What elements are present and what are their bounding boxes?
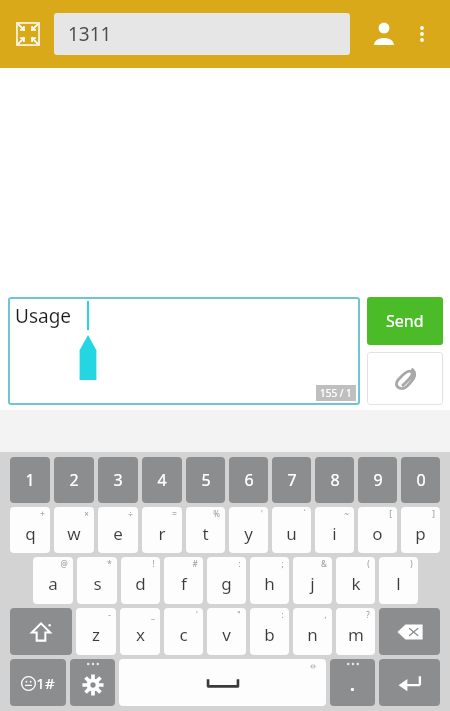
staticText: !: [152, 558, 155, 569]
staticText: &: [321, 558, 327, 569]
staticText: e: [113, 522, 123, 545]
button[interactable]: ÷: [98, 507, 138, 553]
button[interactable]: Usage: [8, 297, 360, 405]
button[interactable]: Space: [119, 659, 326, 706]
staticText: [: [389, 508, 392, 519]
staticText: ': [196, 609, 198, 620]
staticText: `: [303, 508, 306, 519]
button[interactable]: 5: [186, 457, 225, 503]
button[interactable]: 9: [358, 457, 397, 503]
staticText: 3: [113, 469, 123, 491]
staticText: m: [348, 623, 364, 646]
button[interactable]: %: [186, 507, 225, 553]
staticText: 6: [244, 469, 254, 491]
staticText: h: [264, 572, 275, 595]
staticText: ': [261, 508, 263, 519]
button[interactable]: 1#: [10, 659, 66, 706]
button[interactable]: *: [77, 557, 117, 604]
staticText: ": [237, 609, 241, 620]
button[interactable]: Keyboard settings: [70, 659, 115, 706]
button[interactable]: ~: [315, 507, 354, 553]
staticText: i: [332, 522, 337, 545]
button[interactable]: ?: [336, 608, 375, 655]
staticText: 7: [287, 469, 297, 491]
button[interactable]: ': [229, 507, 268, 553]
button[interactable]: [: [358, 507, 397, 553]
staticText: w: [67, 522, 81, 545]
button[interactable]: ×: [54, 507, 94, 553]
staticText: (: [367, 558, 370, 569]
button[interactable]: ,: [293, 608, 332, 655]
button[interactable]: 1: [10, 457, 50, 503]
button[interactable]: 2: [54, 457, 94, 503]
button[interactable]: :: [207, 557, 246, 604]
staticText: :: [238, 558, 241, 569]
staticText: _: [151, 609, 155, 620]
staticText: y: [244, 522, 253, 545]
staticText: k: [351, 572, 361, 595]
button[interactable]: +: [10, 507, 50, 553]
staticText: Usage: [15, 303, 72, 329]
staticText: a: [48, 572, 58, 595]
staticText: 5: [201, 469, 211, 491]
button[interactable]: Enter: [379, 659, 440, 706]
staticText: *: [107, 558, 112, 569]
staticText: 0: [416, 469, 426, 491]
button[interactable]: ]: [401, 507, 440, 553]
button[interactable]: !: [121, 557, 160, 604]
button[interactable]: Send: [367, 297, 443, 345]
staticText: ]: [432, 508, 435, 519]
button[interactable]: :: [250, 608, 289, 655]
staticText: ): [410, 558, 413, 569]
button[interactable]: #: [164, 557, 203, 604]
staticText: 1311: [68, 21, 112, 47]
button[interactable]: `: [272, 507, 311, 553]
staticText: #: [192, 558, 198, 569]
staticText: +: [40, 508, 45, 519]
staticText: ×: [84, 508, 89, 519]
button[interactable]: ': [164, 608, 203, 655]
button[interactable]: @: [33, 557, 73, 604]
button[interactable]: (: [336, 557, 375, 604]
button[interactable]: 4: [142, 457, 182, 503]
button[interactable]: 6: [229, 457, 268, 503]
staticText: r: [158, 522, 166, 545]
button[interactable]: 0: [401, 457, 440, 503]
staticText: ;: [281, 558, 284, 569]
staticText: t: [202, 522, 209, 545]
button[interactable]: Backspace: [379, 608, 440, 655]
button[interactable]: Attach: [367, 352, 443, 405]
staticText: u: [286, 522, 297, 545]
button[interactable]: ): [379, 557, 418, 604]
staticText: x: [136, 623, 145, 646]
button[interactable]: ;: [250, 557, 289, 604]
button[interactable]: Contacts: [364, 14, 404, 54]
staticText: ÷: [128, 508, 133, 519]
staticText: n: [307, 623, 318, 646]
button[interactable]: =: [142, 507, 182, 553]
button[interactable]: 1311: [54, 13, 350, 55]
staticText: 1: [25, 469, 35, 491]
button[interactable]: More options: [404, 16, 440, 52]
button[interactable]: .: [330, 659, 375, 706]
button[interactable]: Shift: [10, 608, 72, 655]
staticText: d: [135, 572, 146, 595]
button[interactable]: ": [207, 608, 246, 655]
staticText: b: [264, 623, 275, 646]
staticText: g: [221, 572, 232, 595]
staticText: ?: [366, 609, 370, 620]
button[interactable]: 3: [98, 457, 138, 503]
button[interactable]: Collapse: [10, 16, 46, 52]
staticText: s: [93, 572, 102, 595]
staticText: q: [25, 522, 36, 545]
staticText: f: [181, 572, 187, 595]
staticText: .: [350, 673, 355, 696]
button[interactable]: &: [293, 557, 332, 604]
button[interactable]: 8: [315, 457, 354, 503]
staticText: o: [372, 522, 383, 545]
staticText: c: [179, 623, 188, 646]
staticText: @: [60, 558, 68, 569]
button[interactable]: _: [120, 608, 160, 655]
button[interactable]: -: [76, 608, 116, 655]
button[interactable]: 7: [272, 457, 311, 503]
